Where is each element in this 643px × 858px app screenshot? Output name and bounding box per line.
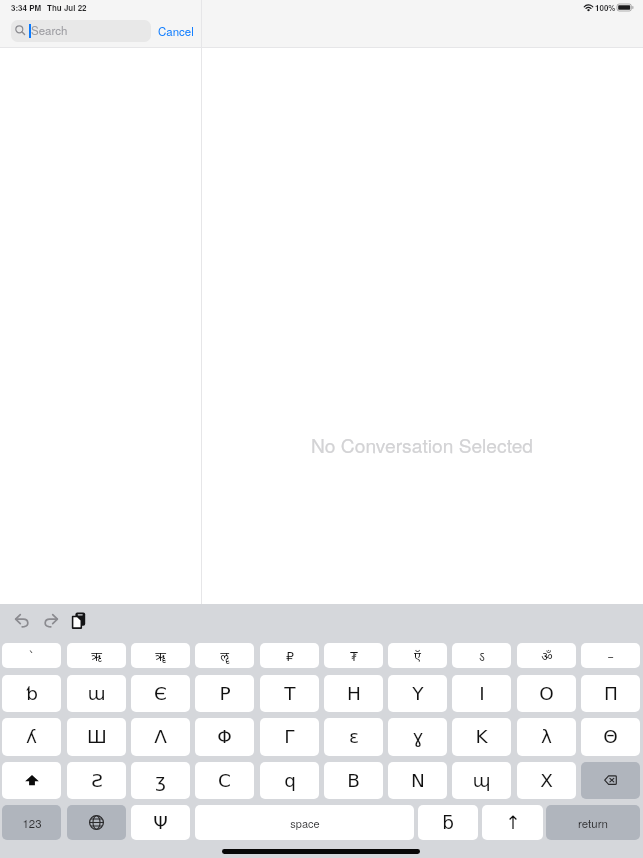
staticText: ↑ xyxy=(505,812,521,834)
button[interactable]: Redo xyxy=(41,612,59,630)
button[interactable]: Ʌ xyxy=(131,718,190,756)
staticText: Κ xyxy=(475,726,488,748)
button[interactable]: ʎ xyxy=(2,718,61,756)
staticText: Ш xyxy=(87,726,107,748)
staticText: Thu Jul 22 xyxy=(47,2,87,13)
staticText: ॠ xyxy=(155,648,166,665)
button[interactable]: Cancel xyxy=(154,20,197,42)
button[interactable]: ʒ xyxy=(131,762,190,799)
button[interactable]: Ν xyxy=(388,762,447,799)
button[interactable]: Ρ xyxy=(195,675,254,712)
staticText: ऽ xyxy=(479,648,485,665)
button[interactable]: ऍ xyxy=(388,643,447,668)
staticText: 100% xyxy=(595,2,616,13)
button[interactable]: ɰ xyxy=(452,762,511,799)
button[interactable]: Υ xyxy=(388,675,447,712)
staticText: Ρ xyxy=(219,683,231,705)
button[interactable]: ƃ xyxy=(418,805,478,840)
staticText: 123 xyxy=(22,815,42,831)
staticText: Ψ xyxy=(153,812,168,834)
staticText: ` xyxy=(28,649,35,664)
button[interactable]: Ш xyxy=(67,718,126,756)
staticText: ऍ xyxy=(414,648,421,665)
staticText: Cancel xyxy=(158,23,194,39)
staticText: return xyxy=(578,815,608,831)
staticText: Υ xyxy=(412,683,424,705)
button[interactable]: ₽ xyxy=(260,643,319,668)
button[interactable]: ` xyxy=(2,643,61,668)
staticText: Π xyxy=(604,683,618,705)
button[interactable]: Undo xyxy=(14,612,32,630)
button[interactable]: Ψ xyxy=(131,805,190,840)
staticText: Search xyxy=(31,22,68,38)
button[interactable]: ɯ xyxy=(67,675,126,712)
button[interactable]: ॐ xyxy=(517,643,576,668)
button[interactable]: ԛ xyxy=(260,762,319,799)
staticText: – xyxy=(607,649,614,664)
button[interactable]: – xyxy=(581,643,640,668)
button[interactable]: Φ xyxy=(195,718,254,756)
button[interactable]: space xyxy=(195,805,414,840)
button[interactable]: ε xyxy=(324,718,383,756)
button[interactable]: ₮ xyxy=(324,643,383,668)
button[interactable]: Ι xyxy=(452,675,511,712)
button[interactable]: Paste xyxy=(71,611,88,630)
button[interactable]: Є xyxy=(131,675,190,712)
button[interactable]: ɣ xyxy=(388,718,447,756)
staticText: ₽ xyxy=(286,649,294,664)
staticText: λ xyxy=(541,726,552,748)
button[interactable]: Search xyxy=(11,20,151,42)
staticText: Χ xyxy=(540,770,553,792)
staticText: ƃ xyxy=(442,812,454,834)
staticText: ʎ xyxy=(26,726,37,748)
staticText: ԛ xyxy=(284,770,296,792)
button[interactable]: Ϲ xyxy=(195,762,254,799)
button[interactable]: Β xyxy=(324,762,383,799)
staticText: ₮ xyxy=(350,649,358,664)
button[interactable]: Shift xyxy=(2,762,61,799)
button[interactable]: Κ xyxy=(452,718,511,756)
staticText: Η xyxy=(347,683,361,705)
button[interactable]: 123 xyxy=(2,805,61,840)
button[interactable]: Γ xyxy=(260,718,319,756)
button[interactable]: Χ xyxy=(517,762,576,799)
staticText: Θ xyxy=(603,726,618,748)
staticText: Ϲ xyxy=(218,770,231,792)
button[interactable]: ॠ xyxy=(131,643,190,668)
staticText: Ν xyxy=(411,770,425,792)
staticText: Γ xyxy=(284,726,295,748)
button[interactable]: ॡ xyxy=(195,643,254,668)
staticText: ɰ xyxy=(472,770,491,792)
staticText: ʒ xyxy=(155,770,166,792)
button[interactable]: ƅ xyxy=(2,675,61,712)
staticText: ॐ xyxy=(541,648,553,665)
staticText: Ι xyxy=(479,683,485,705)
staticText: Ʌ xyxy=(154,726,167,748)
staticText: Β xyxy=(347,770,360,792)
button[interactable]: Ƨ xyxy=(67,762,126,799)
button[interactable]: Change keyboard xyxy=(67,805,126,840)
staticText: Τ xyxy=(284,683,296,705)
button[interactable]: Ο xyxy=(517,675,576,712)
button[interactable]: λ xyxy=(517,718,576,756)
staticText: ε xyxy=(349,726,359,748)
staticText: ɣ xyxy=(412,726,424,748)
staticText: ɯ xyxy=(87,683,106,705)
staticText: space xyxy=(290,815,320,831)
staticText: ॡ xyxy=(220,648,229,665)
staticText: ƅ xyxy=(26,683,38,705)
button[interactable]: return xyxy=(546,805,640,840)
staticText: No Conversation Selected xyxy=(311,431,534,458)
staticText: Є xyxy=(154,683,167,705)
staticText: Ο xyxy=(539,683,554,705)
button[interactable]: Τ xyxy=(260,675,319,712)
button[interactable]: Backspace xyxy=(581,762,640,799)
staticText: Φ xyxy=(217,726,232,748)
button[interactable]: ऋ xyxy=(67,643,126,668)
button[interactable]: ऽ xyxy=(452,643,511,668)
button[interactable]: Η xyxy=(324,675,383,712)
button[interactable]: ↑ xyxy=(482,805,543,840)
button[interactable]: Π xyxy=(581,675,640,712)
staticText: Ƨ xyxy=(91,770,103,792)
button[interactable]: Θ xyxy=(581,718,640,756)
